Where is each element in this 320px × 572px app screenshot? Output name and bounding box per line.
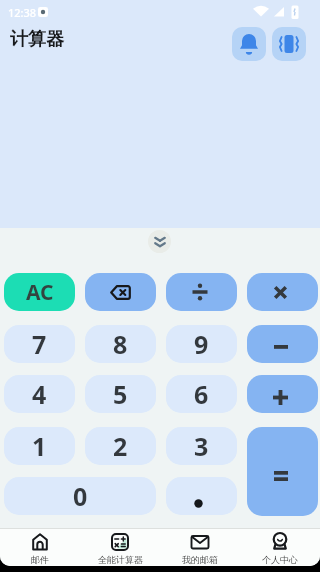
button[interactable]: 4 [4, 375, 75, 413]
button[interactable] [148, 230, 171, 253]
staticText: 0 [73, 479, 88, 513]
staticText: 1 [32, 429, 47, 463]
button[interactable]: 1 [4, 427, 75, 465]
button[interactable]: 3 [166, 427, 237, 465]
button[interactable]: 8 [85, 325, 156, 363]
button[interactable] [247, 325, 318, 363]
button[interactable] [232, 27, 266, 61]
staticText: 4 [32, 377, 47, 411]
button[interactable]: 9 [166, 325, 237, 363]
staticText: 全能计算器 [98, 554, 143, 565]
button[interactable]: 我的邮箱 [160, 532, 240, 566]
staticText: 计算器 [10, 28, 64, 51]
staticText: 8 [113, 327, 128, 361]
button[interactable]: 个人中心 [240, 532, 320, 566]
button[interactable] [247, 427, 318, 516]
staticText: 6 [194, 377, 209, 411]
staticText: 12:38 [8, 5, 37, 20]
button[interactable] [85, 273, 156, 311]
button[interactable] [247, 273, 318, 311]
staticText: 5 [113, 377, 128, 411]
button[interactable] [166, 477, 237, 515]
button[interactable] [247, 375, 318, 413]
button[interactable] [272, 27, 306, 61]
button[interactable]: 0 [4, 477, 156, 515]
staticText: 3 [194, 429, 209, 463]
button[interactable]: 2 [85, 427, 156, 465]
staticText: 7 [32, 327, 47, 361]
button[interactable]: AC [4, 273, 75, 311]
staticText: 我的邮箱 [182, 554, 218, 565]
staticText: 邮件 [31, 554, 49, 565]
staticText: 2 [113, 429, 128, 463]
staticText: 9 [194, 327, 209, 361]
button[interactable]: 7 [4, 325, 75, 363]
staticText: 个人中心 [262, 554, 298, 565]
button[interactable] [166, 273, 237, 311]
staticText: AC [26, 278, 54, 307]
button[interactable]: 5 [85, 375, 156, 413]
button[interactable]: 邮件 [0, 532, 80, 566]
button[interactable]: 全能计算器 [80, 532, 160, 566]
button[interactable]: 6 [166, 375, 237, 413]
